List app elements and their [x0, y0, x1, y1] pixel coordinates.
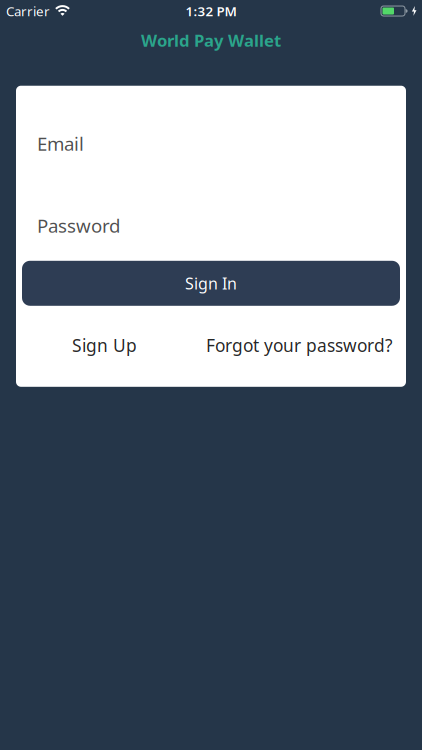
staticText: Carrier	[6, 2, 50, 20]
staticText: World Pay Wallet	[141, 29, 281, 52]
staticText: Password	[37, 213, 120, 238]
staticText: Email	[37, 131, 84, 156]
staticText: 1:32 PM	[185, 2, 236, 20]
button[interactable]: Password	[16, 213, 406, 238]
button[interactable]: Email	[16, 131, 406, 156]
staticText: Sign In	[185, 273, 237, 294]
staticText: Forgot your password?	[206, 334, 393, 357]
button[interactable]: Sign In	[22, 261, 400, 306]
button[interactable]: Forgot your password?	[193, 334, 406, 357]
button[interactable]: Sign Up	[16, 334, 193, 357]
staticText: Sign Up	[72, 334, 137, 357]
